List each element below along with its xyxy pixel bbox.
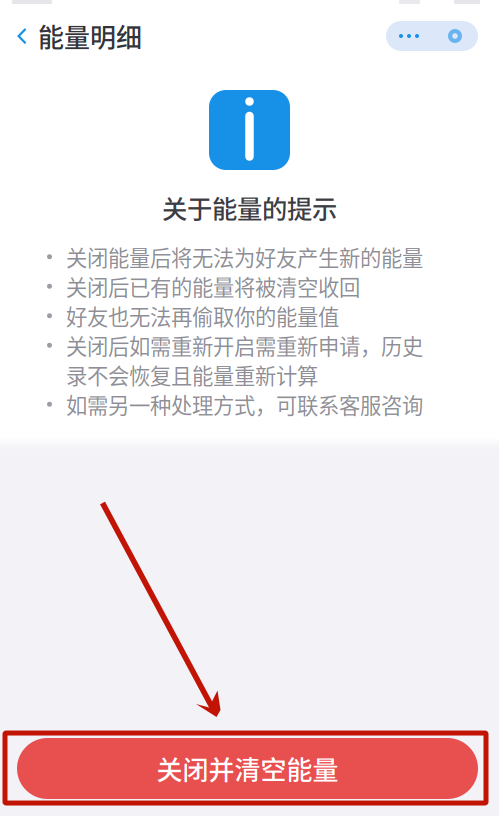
staticText: 好友也无法再偷取你的能量值 — [66, 300, 339, 331]
staticText: 关闭后已有的能量将被清空收回 — [66, 271, 360, 302]
staticText: 关闭后如需重新开启需重新申请，历史 — [66, 330, 423, 361]
staticText: 关闭能量后将无法为好友产生新的能量 — [66, 241, 423, 272]
staticText: 录不会恢复且能量重新计算 — [66, 359, 318, 390]
staticText: 关闭并清空能量 — [156, 750, 338, 787]
staticText: 能量明细 — [38, 17, 142, 55]
staticText: 如需另一种处理方式，可联系客服咨询 — [66, 389, 423, 420]
button[interactable]: 能量明细 — [0, 9, 152, 63]
button[interactable]: 关闭并清空能量 — [17, 738, 478, 799]
staticText: 关于能量的提示 — [162, 189, 337, 226]
button[interactable]: 更多 — [386, 21, 499, 51]
